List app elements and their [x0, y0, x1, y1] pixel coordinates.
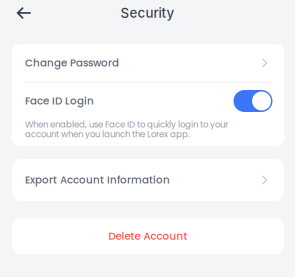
staticText: Security — [120, 5, 174, 21]
staticText: Change Password — [25, 56, 119, 70]
staticText: Face ID Login — [25, 94, 94, 108]
button[interactable]: Change Password — [12, 44, 284, 81]
button[interactable]: Delete Account — [12, 218, 284, 254]
button[interactable]: Face ID Login — [233, 90, 272, 112]
staticText: When enabled, use Face ID to quickly log… — [25, 119, 228, 139]
button[interactable]: Back — [9, 0, 39, 26]
staticText: Delete Account — [108, 229, 187, 243]
staticText: Export Account Information — [25, 173, 170, 187]
button[interactable]: Export Account Information — [12, 159, 284, 201]
